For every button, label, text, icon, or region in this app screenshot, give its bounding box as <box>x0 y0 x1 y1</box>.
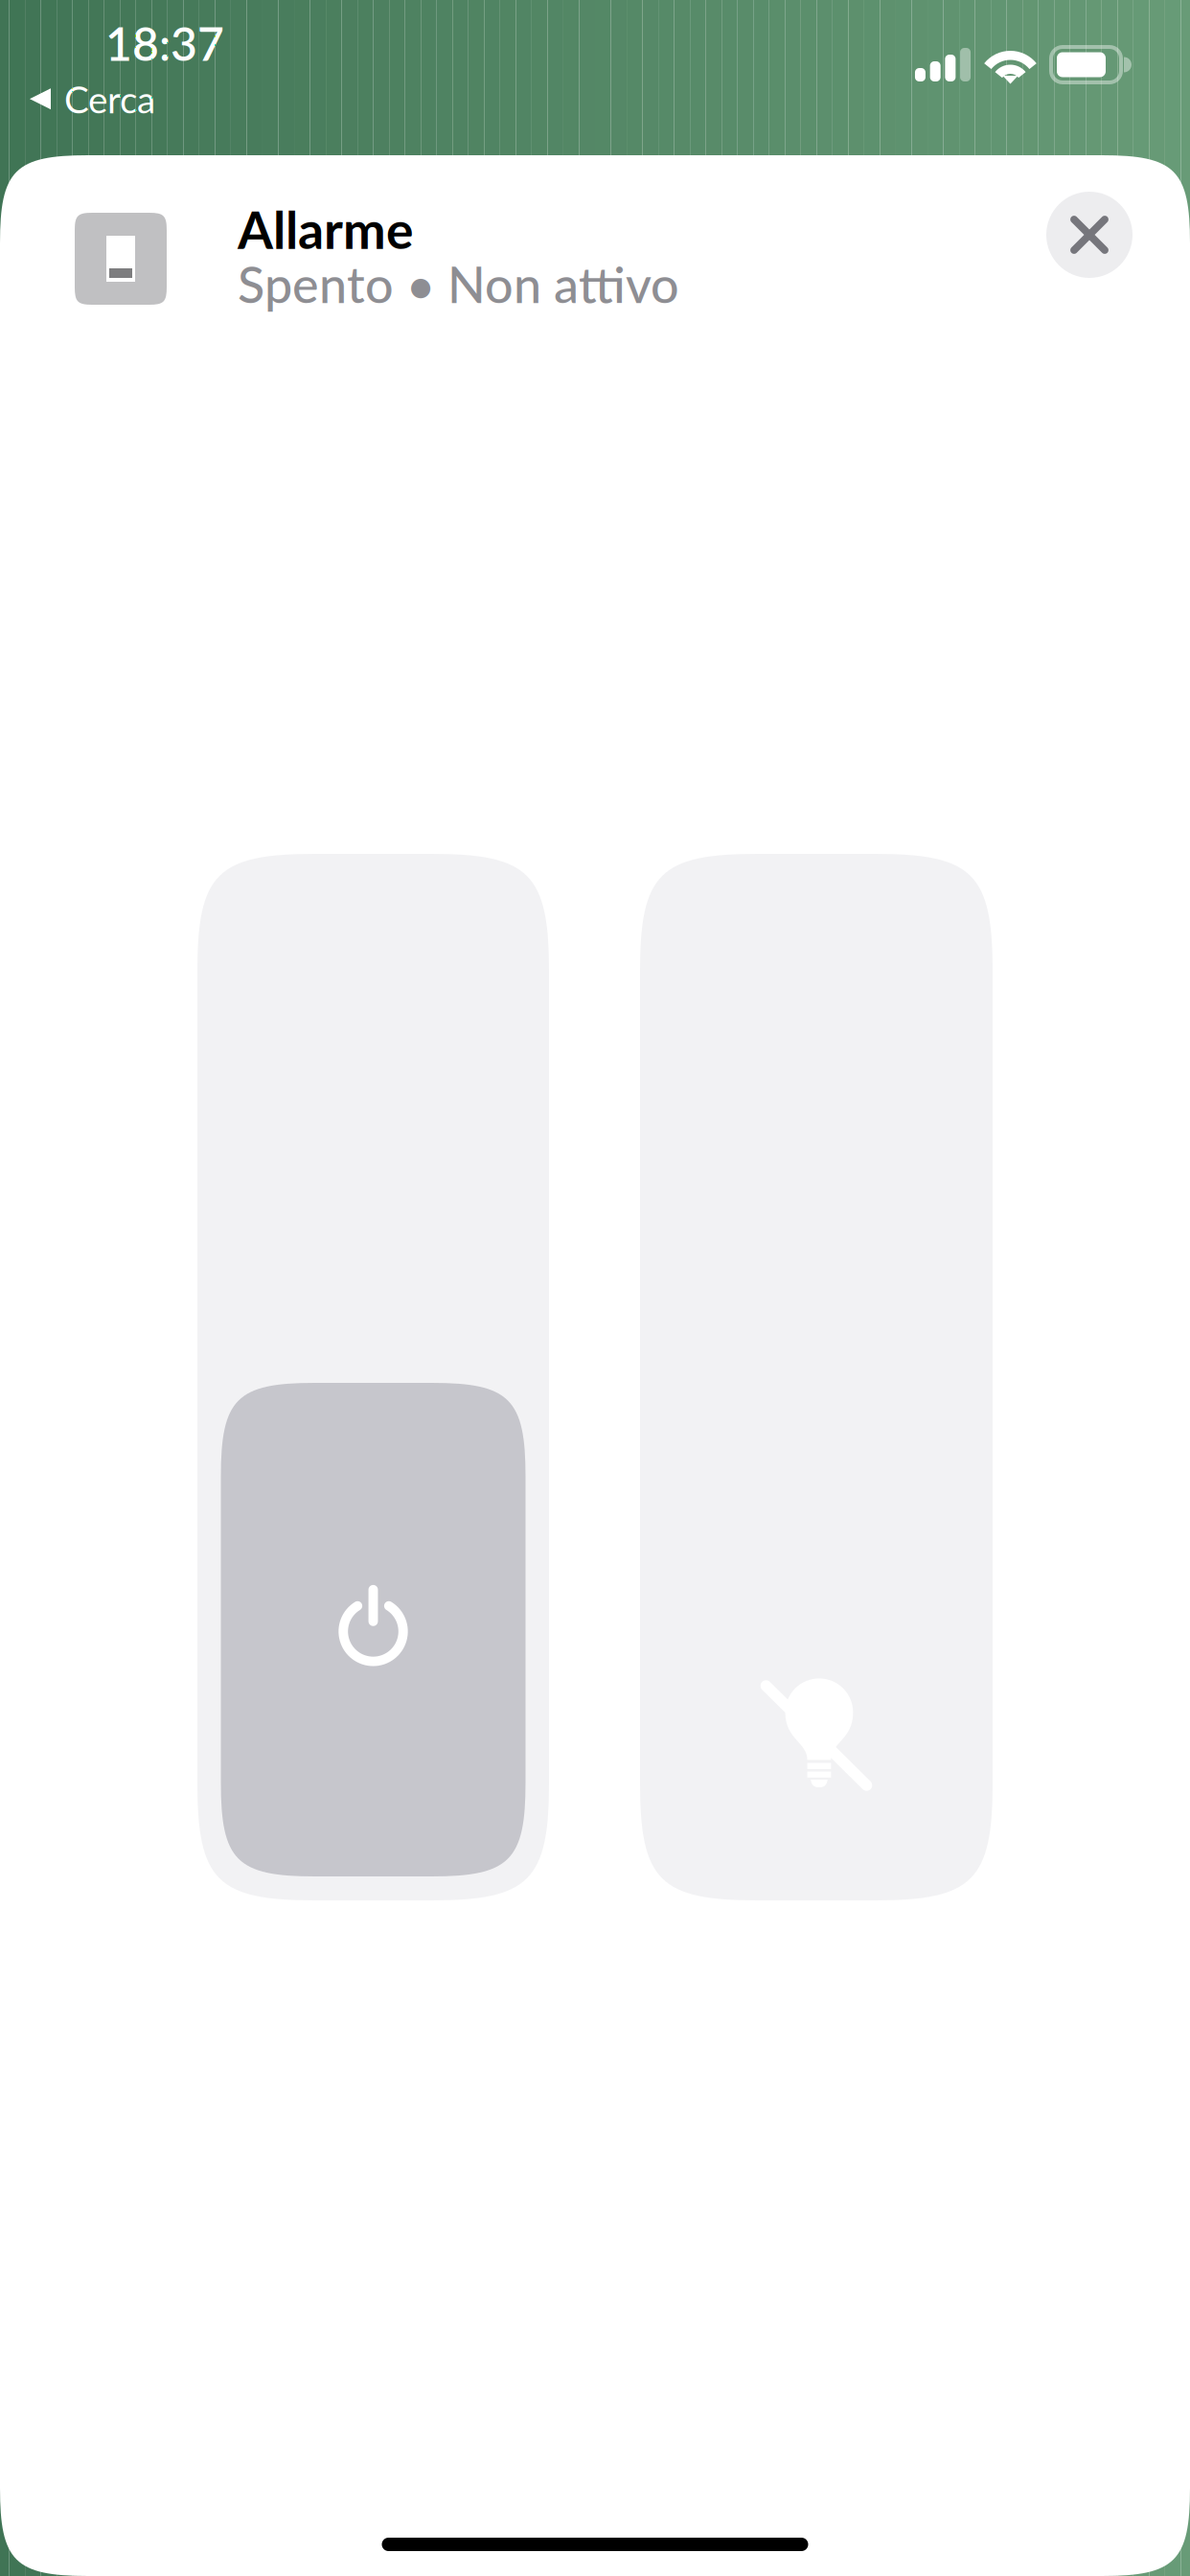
staticText: 18:37 <box>105 15 224 71</box>
staticText: Spento • Non attivo <box>238 254 679 314</box>
button[interactable]: Chiudi <box>1046 192 1133 278</box>
button[interactable]: Interruttore acceso/spento <box>197 854 549 1900</box>
button[interactable]: Cerca <box>24 69 161 129</box>
staticText: Cerca <box>64 77 155 121</box>
staticText: Allarme <box>238 198 413 260</box>
